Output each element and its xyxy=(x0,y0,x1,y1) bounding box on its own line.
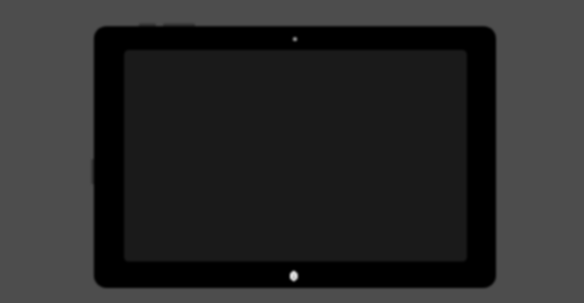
button[interactable]: Tablet device preview xyxy=(0,0,584,303)
